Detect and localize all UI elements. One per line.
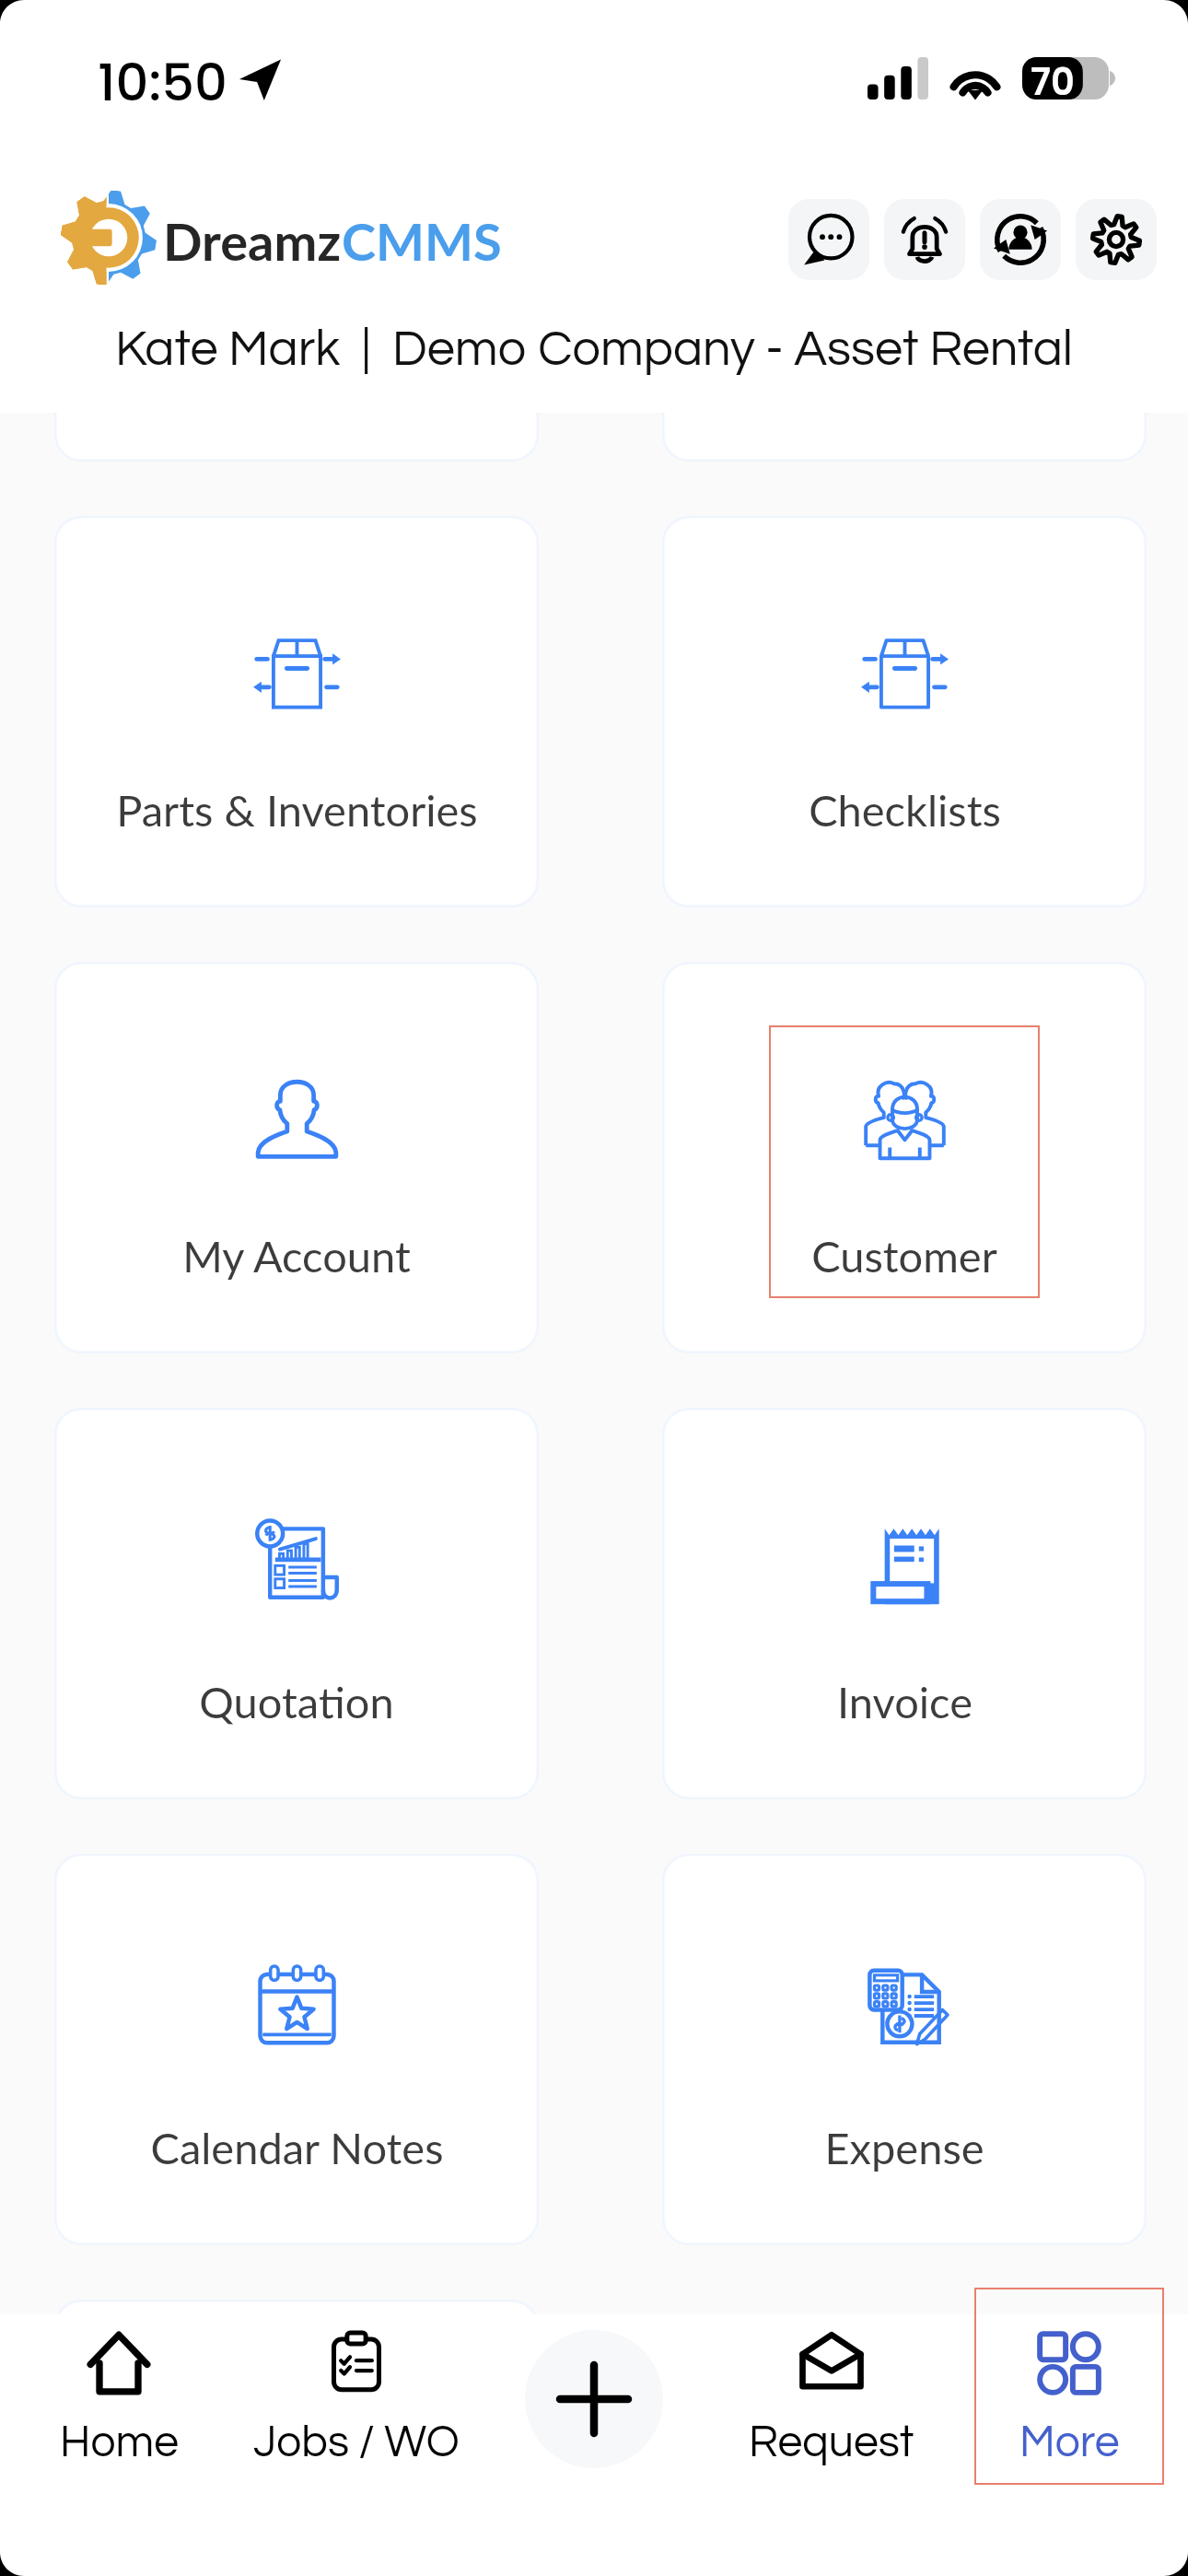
staticText: CMMS (342, 210, 502, 272)
staticText: More (1019, 2420, 1120, 2465)
button[interactable]: Jobs / WO (238, 2314, 475, 2576)
staticText: 10:50 (98, 46, 227, 118)
button[interactable]: Add (525, 2330, 663, 2468)
staticText: Dreamz (163, 210, 342, 272)
button[interactable]: Invoice (665, 1411, 1144, 1797)
staticText: Calendar Notes (150, 2122, 444, 2173)
button[interactable]: Expense (665, 1856, 1144, 2242)
staticText: Parts & Inventories (116, 784, 478, 836)
staticText: Customer (811, 1230, 997, 1282)
staticText: My Account (182, 1230, 411, 1282)
staticText: Invoice (837, 1676, 973, 1727)
button[interactable]: Checklists (665, 519, 1144, 905)
staticText: Checklists (809, 784, 1001, 836)
staticText: Quotation (199, 1676, 394, 1727)
button[interactable]: Notifications (884, 199, 965, 280)
button[interactable]: Switch account (980, 199, 1061, 280)
staticText: Kate Mark | Demo Company - Asset Rental (0, 324, 1188, 376)
staticText: Home (60, 2420, 179, 2465)
button[interactable]: My Account (57, 965, 536, 1351)
button[interactable]: Messages (788, 199, 869, 280)
button[interactable]: Calendar Notes (57, 1856, 536, 2242)
button[interactable]: Quotation (57, 1411, 536, 1797)
button[interactable]: Customer (665, 965, 1144, 1351)
button[interactable]: Request (713, 2314, 950, 2576)
staticText: 70 (1031, 56, 1075, 108)
staticText: Request (749, 2420, 914, 2465)
staticText: Jobs / WO (253, 2420, 460, 2465)
button[interactable]: More (950, 2314, 1188, 2576)
button[interactable]: Settings (1076, 199, 1157, 280)
staticText: Expense (824, 2122, 984, 2173)
button[interactable]: Parts & Inventories (57, 519, 536, 905)
button[interactable]: Home (0, 2314, 238, 2576)
